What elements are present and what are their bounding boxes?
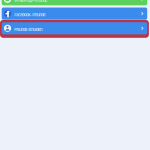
staticText: Facebook-Freunde xyxy=(14,12,45,17)
staticText: Freunde einladen xyxy=(14,27,42,32)
button[interactable]: Facebook-Freunde xyxy=(2,7,147,20)
button[interactable]: WhatsApp-Freunde xyxy=(2,0,147,5)
staticText: WhatsApp-Freunde xyxy=(14,0,47,3)
button[interactable]: Freunde einladen xyxy=(2,22,147,34)
